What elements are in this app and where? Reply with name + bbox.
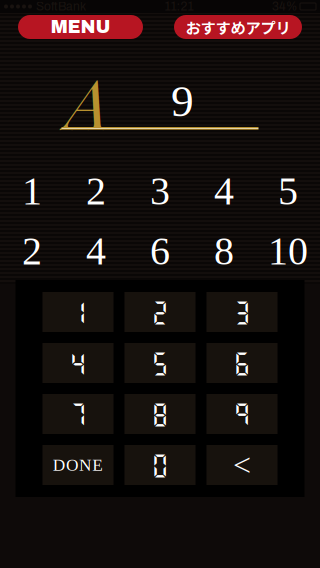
button[interactable]: 1 — [42, 292, 113, 332]
staticText: 6 — [150, 229, 170, 273]
button[interactable]: 5 — [124, 343, 195, 383]
staticText: 8 — [151, 399, 169, 429]
button[interactable]: 3 — [206, 292, 277, 332]
staticText: 9 — [233, 399, 251, 429]
button[interactable]: 8 — [124, 394, 195, 434]
staticText: 1 — [69, 297, 87, 327]
button[interactable]: 0 — [124, 445, 195, 485]
button[interactable]: 7 — [42, 394, 113, 434]
staticText: 3 — [150, 169, 170, 213]
staticText: D — [53, 455, 66, 475]
staticText: 6 — [233, 348, 251, 378]
staticText: 1 — [22, 169, 42, 213]
staticText: 9 — [171, 76, 194, 126]
staticText: A — [65, 55, 109, 147]
button[interactable]: MENU — [18, 15, 143, 39]
staticText: 11:21 — [164, 0, 193, 13]
button[interactable]: 6 — [206, 343, 277, 383]
staticText: 34% — [272, 0, 297, 13]
button[interactable]: 4 — [42, 343, 113, 383]
button[interactable]: おすすめアプリ — [174, 15, 302, 39]
staticText: 2 — [86, 169, 106, 213]
staticText: 4 — [69, 348, 87, 378]
staticText: おすすめアプリ — [185, 16, 290, 38]
staticText: E — [92, 455, 103, 475]
button[interactable]: D — [42, 445, 113, 485]
staticText: 7 — [69, 399, 87, 429]
staticText: MENU — [50, 17, 110, 37]
staticText: < — [233, 447, 251, 483]
staticText: 2 — [22, 229, 42, 273]
staticText: SoftBank — [36, 0, 86, 13]
staticText: 8 — [214, 229, 234, 273]
staticText: 4 — [86, 229, 106, 273]
staticText: O — [66, 455, 79, 475]
staticText: 10 — [268, 229, 308, 273]
button[interactable]: 9 — [206, 394, 277, 434]
staticText: N — [79, 455, 92, 475]
staticText: 5 — [278, 169, 298, 213]
staticText: 0 — [151, 450, 169, 480]
staticText: 4 — [214, 169, 234, 213]
button[interactable]: < — [206, 445, 277, 485]
staticText: 3 — [233, 297, 251, 327]
staticText: 2 — [151, 297, 169, 327]
staticText: 5 — [151, 348, 169, 378]
button[interactable]: 2 — [124, 292, 195, 332]
